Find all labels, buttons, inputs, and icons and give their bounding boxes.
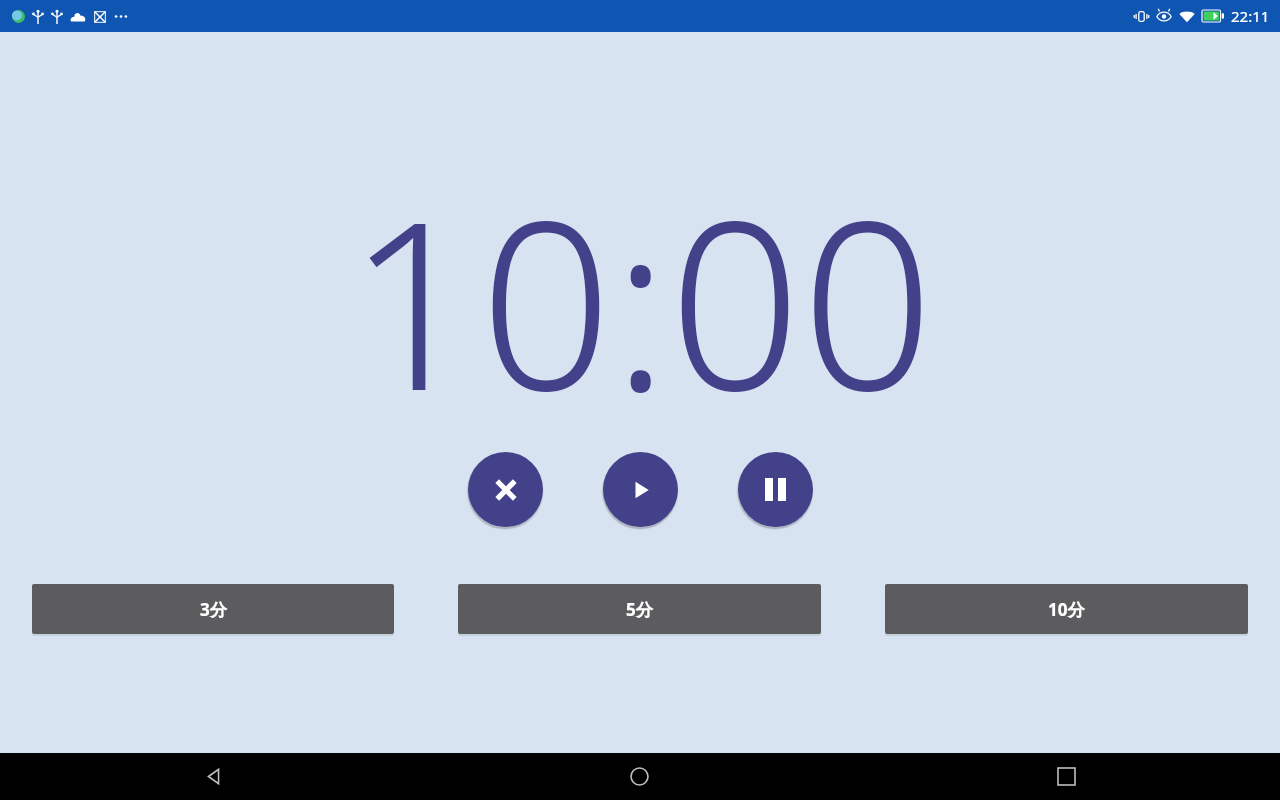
button[interactable]: Back <box>0 753 426 800</box>
staticText: 10:00 <box>347 142 934 458</box>
button[interactable]: Home <box>426 753 853 800</box>
staticText: 5分 <box>626 598 653 621</box>
staticText: 3分 <box>200 598 227 621</box>
button[interactable]: Pause <box>738 452 813 527</box>
button[interactable]: Recent apps <box>853 753 1280 800</box>
staticText: 10分 <box>1048 598 1085 621</box>
button[interactable]: Start <box>603 452 678 527</box>
button[interactable]: 3分 <box>32 584 394 634</box>
button[interactable]: 5分 <box>458 584 821 634</box>
button[interactable]: Stop <box>468 452 543 527</box>
staticText: 22:11 <box>1231 6 1270 26</box>
button[interactable]: 10分 <box>885 584 1248 634</box>
